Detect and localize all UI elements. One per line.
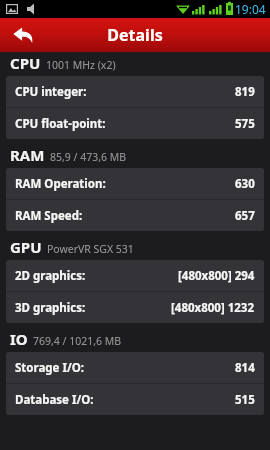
staticText: PowerVR SGX 531 bbox=[47, 242, 134, 256]
staticText: RAM Speed: bbox=[15, 208, 83, 224]
staticText: CPU float-point: bbox=[15, 116, 106, 132]
staticText: 85,9 / 473,6 MB bbox=[50, 150, 127, 164]
button[interactable]: CPU float-point: bbox=[6, 108, 264, 139]
button[interactable]: 3D graphics: bbox=[6, 292, 264, 323]
staticText: Details bbox=[107, 24, 163, 46]
staticText: Database I/O: bbox=[15, 392, 94, 408]
button[interactable]: Back bbox=[6, 18, 40, 52]
staticText: 575 bbox=[235, 116, 255, 132]
staticText: [480x800] 294 bbox=[178, 268, 255, 284]
staticText: RAM bbox=[10, 145, 45, 165]
button[interactable]: RAM Speed: bbox=[6, 200, 264, 231]
staticText: [480x800] 1232 bbox=[171, 300, 255, 316]
staticText: RAM Operation: bbox=[15, 176, 106, 192]
staticText: 19:04 bbox=[235, 1, 266, 17]
staticText: 630 bbox=[235, 176, 255, 192]
staticText: 769,4 / 1021,6 MB bbox=[33, 334, 122, 348]
button[interactable]: RAM Operation: bbox=[6, 168, 264, 199]
button[interactable]: Storage I/O: bbox=[6, 352, 264, 383]
button[interactable]: 2D graphics: bbox=[6, 260, 264, 291]
staticText: 814 bbox=[235, 360, 255, 376]
staticText: 657 bbox=[235, 208, 255, 224]
staticText: 819 bbox=[235, 84, 255, 100]
staticText: GPU bbox=[10, 237, 42, 257]
staticText: 515 bbox=[235, 392, 255, 408]
staticText: CPU bbox=[10, 53, 41, 73]
button[interactable]: CPU integer: bbox=[6, 76, 264, 107]
staticText: 2D graphics: bbox=[15, 268, 86, 284]
staticText: 1001 MHz (x2) bbox=[46, 58, 116, 72]
staticText: Storage I/O: bbox=[15, 360, 85, 376]
staticText: CPU integer: bbox=[15, 84, 87, 100]
button[interactable]: Database I/O: bbox=[6, 384, 264, 415]
staticText: 3D graphics: bbox=[15, 300, 86, 316]
staticText: IO bbox=[10, 329, 28, 349]
